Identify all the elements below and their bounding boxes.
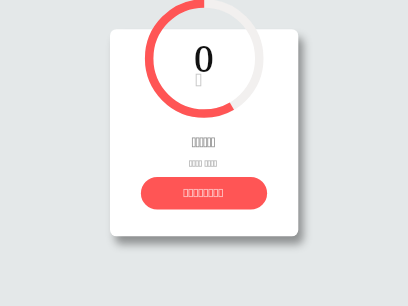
button[interactable]: Start [141,177,267,210]
button[interactable]: Counter card [110,29,298,169]
